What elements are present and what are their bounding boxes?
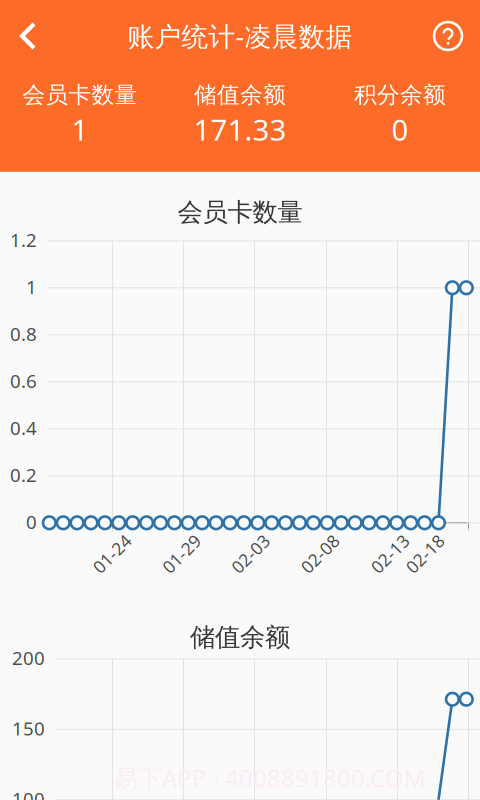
button[interactable]: Back [0, 12, 54, 60]
staticText: 会员卡数量 [22, 81, 137, 109]
staticText: 02-13 [367, 542, 413, 565]
staticText: 易下APP · 4008891800.COM [114, 762, 426, 794]
staticText: 0.8 [10, 321, 37, 346]
staticText: 150 [12, 716, 45, 741]
staticText: 0 [391, 110, 408, 149]
staticText: 储值余额 [194, 81, 286, 109]
button[interactable]: Help [418, 10, 480, 62]
staticText: 0.4 [10, 415, 37, 440]
staticText: 储值余额 [190, 622, 290, 653]
staticText: 0 [26, 509, 37, 534]
staticText: 01-29 [158, 542, 204, 565]
staticText: 积分余额 [354, 81, 446, 109]
staticText: 02-03 [227, 542, 273, 565]
staticText: 02-18 [402, 542, 448, 565]
staticText: 1.2 [10, 227, 37, 252]
staticText: 100 [12, 786, 45, 800]
staticText: 会员卡数量 [177, 197, 302, 228]
staticText: 200 [12, 645, 45, 670]
staticText: 01-24 [89, 542, 135, 565]
staticText: 0.6 [10, 368, 37, 393]
staticText: 1 [26, 274, 37, 299]
staticText: 171.33 [193, 110, 286, 149]
staticText: 02-08 [297, 542, 343, 565]
staticText: 0.2 [10, 462, 37, 487]
staticText: 账户统计-凌晨数据 [127, 18, 352, 54]
staticText: 1 [71, 110, 88, 149]
